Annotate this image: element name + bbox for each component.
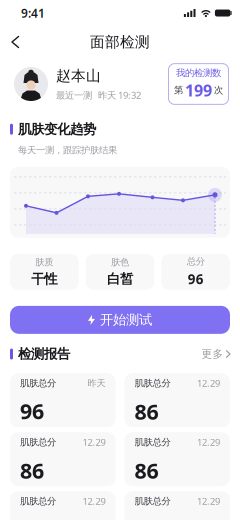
staticText: 肌肤总分 (20, 377, 56, 389)
button[interactable]: 肌肤总分 (124, 491, 230, 520)
button[interactable]: 肌肤总分 (10, 432, 115, 486)
staticText: 肌肤总分 (20, 436, 56, 448)
staticText: 12.29 (197, 436, 220, 448)
staticText: 赵本山 (56, 67, 101, 85)
staticText: 更多 (201, 347, 223, 361)
staticText: 9:41 (21, 5, 45, 21)
staticText: 最近一测 昨天 19:32 (56, 89, 141, 101)
staticText: 12.29 (82, 436, 105, 448)
staticText: 白皙 (107, 271, 133, 287)
staticText: 12.29 (197, 495, 220, 507)
button[interactable]: 我的检测数 (168, 63, 229, 105)
staticText: 肌肤变化趋势 (18, 121, 96, 137)
staticText: 我的检测数 (176, 67, 221, 79)
staticText: 总分 (187, 256, 205, 267)
staticText: 面部检测 (90, 33, 150, 51)
staticText: 199 (185, 80, 212, 101)
staticText: 肌肤总分 (134, 495, 170, 507)
staticText: 肤色 (111, 256, 129, 268)
staticText: 86 (134, 397, 158, 425)
staticText: 肤质 (35, 256, 53, 268)
button[interactable]: 开始测试 (10, 306, 230, 334)
staticText: 86 (134, 456, 158, 484)
staticText: 12.29 (82, 495, 105, 507)
staticText: 开始测试 (100, 312, 152, 328)
staticText: 昨天 (87, 377, 105, 389)
staticText: 每天一测，跟踪护肤结果 (18, 144, 117, 156)
button[interactable]: 更多 (201, 347, 230, 361)
staticText: 肌肤总分 (20, 495, 56, 507)
button[interactable]: 肌肤总分 (10, 491, 115, 520)
staticText: 12.29 (197, 377, 220, 389)
button[interactable]: 肌肤总分 (10, 373, 115, 427)
staticText: 肌肤总分 (134, 377, 170, 389)
staticText: 次 (214, 84, 223, 96)
staticText: 检测报告 (18, 346, 70, 362)
staticText: 第 (174, 84, 183, 96)
button[interactable]: 肌肤总分 (124, 373, 230, 427)
button[interactable]: 肌肤总分 (124, 432, 230, 486)
staticText: 86 (20, 456, 44, 484)
staticText: 96 (188, 270, 204, 288)
staticText: 肌肤总分 (134, 436, 170, 448)
button[interactable]: Back (0, 28, 18, 55)
staticText: 96 (20, 397, 44, 425)
staticText: 干性 (31, 271, 57, 287)
